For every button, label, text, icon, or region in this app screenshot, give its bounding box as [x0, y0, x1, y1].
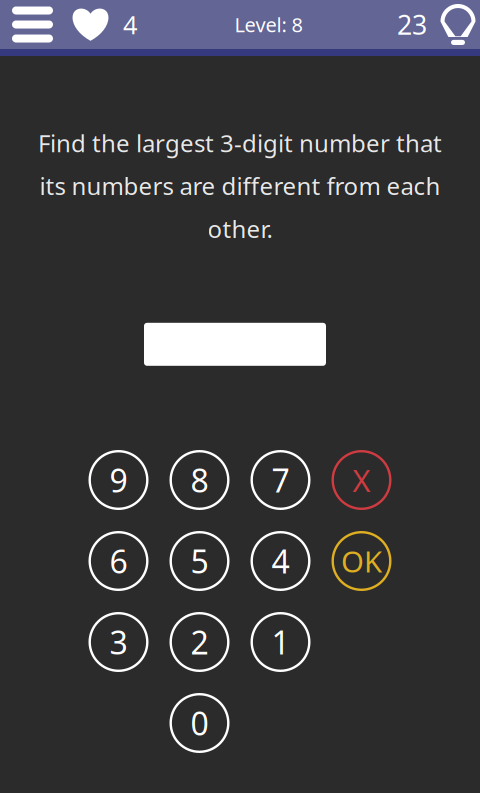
staticText: 3	[109, 621, 127, 663]
staticText: OK	[341, 541, 382, 580]
staticText: 23	[397, 7, 427, 42]
button[interactable]: OK, submit answer	[331, 531, 391, 591]
button[interactable]: 1	[250, 612, 310, 672]
button[interactable]: 7	[250, 450, 310, 510]
staticText: 2	[190, 621, 208, 663]
staticText: Find the largest 3-digit number that	[38, 127, 442, 159]
staticText: 7	[271, 459, 289, 501]
button[interactable]: 3	[88, 612, 148, 672]
button[interactable]: Delete	[331, 450, 391, 510]
button[interactable]: Answer	[144, 323, 326, 366]
button[interactable]: 2	[169, 612, 229, 672]
staticText: 1	[271, 621, 289, 663]
staticText: other.	[207, 213, 272, 245]
button[interactable]: Menu	[0, 0, 65, 49]
staticText: Level: 8	[234, 11, 302, 38]
staticText: 8	[190, 459, 208, 501]
staticText: X	[352, 460, 370, 500]
button[interactable]: 9	[88, 450, 148, 510]
staticText: 6	[109, 540, 127, 582]
staticText: its numbers are different from each	[39, 170, 440, 202]
staticText: 4	[123, 8, 137, 41]
button[interactable]: Lives: 4	[65, 0, 137, 49]
button[interactable]: 6	[88, 531, 148, 591]
staticText: 5	[190, 540, 208, 582]
button[interactable]: 4	[250, 531, 310, 591]
button[interactable]: Hints: 23	[397, 0, 480, 49]
button[interactable]: 0	[169, 693, 229, 753]
button[interactable]: 5	[169, 531, 229, 591]
staticText: 4	[271, 540, 289, 582]
staticText: 0	[190, 702, 208, 744]
button[interactable]: 8	[169, 450, 229, 510]
staticText: 9	[109, 459, 127, 501]
